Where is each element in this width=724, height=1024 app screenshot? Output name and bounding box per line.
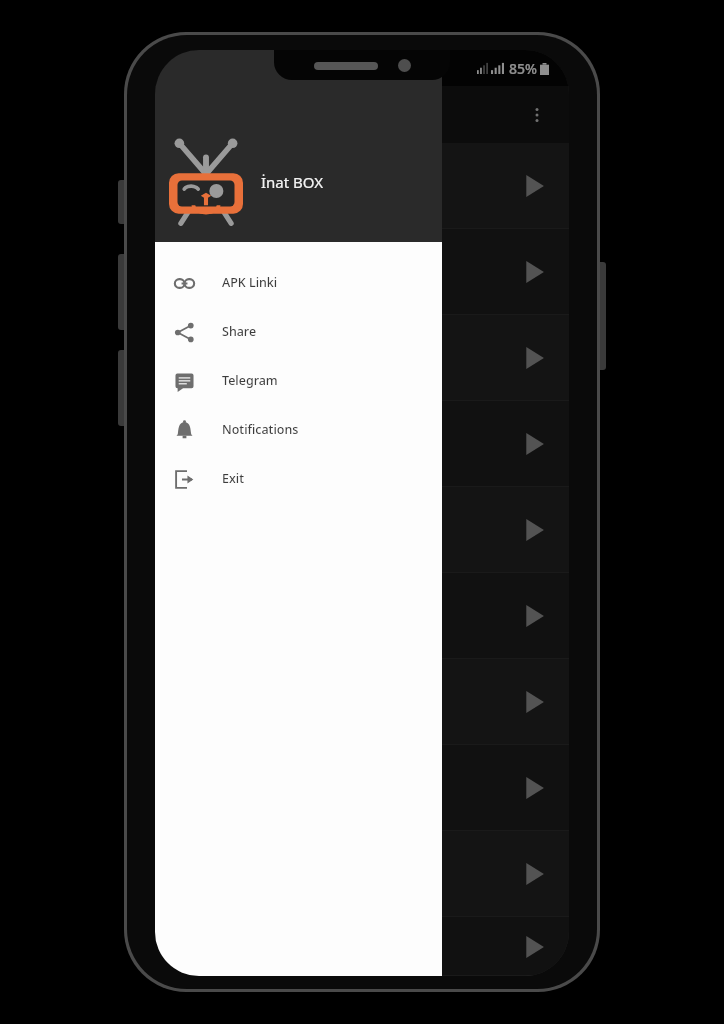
button[interactable]: APK Linki: [155, 258, 442, 307]
button[interactable]: [155, 659, 569, 745]
button[interactable]: [155, 487, 569, 573]
button[interactable]: [155, 745, 569, 831]
staticText: APK Linki: [222, 274, 278, 291]
button[interactable]: [155, 401, 569, 487]
staticText: Exit: [222, 470, 244, 487]
button[interactable]: [155, 573, 569, 659]
button[interactable]: Share: [155, 307, 442, 356]
staticText: İnat BOX: [261, 172, 324, 192]
button[interactable]: [155, 315, 569, 401]
staticText: Telegram: [222, 372, 278, 389]
button[interactable]: [155, 831, 569, 917]
button[interactable]: [155, 917, 569, 976]
button[interactable]: Notifications: [155, 405, 442, 454]
button[interactable]: Telegram: [155, 356, 442, 405]
staticText: Share: [222, 323, 257, 340]
staticText: 85%: [509, 59, 537, 78]
button[interactable]: Exit: [155, 454, 442, 503]
staticText: Notifications: [222, 421, 299, 438]
button[interactable]: [155, 229, 569, 315]
button[interactable]: More options: [517, 95, 557, 135]
button[interactable]: [155, 143, 569, 229]
